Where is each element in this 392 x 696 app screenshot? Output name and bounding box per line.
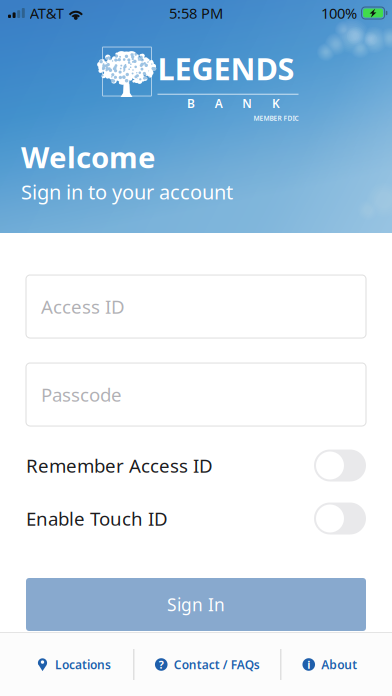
staticText: Access ID	[41, 294, 125, 319]
button[interactable]: Enable Touch ID	[26, 492, 366, 545]
staticText: 5:58 PM	[169, 3, 223, 23]
staticText: About	[321, 656, 357, 672]
staticText: Contact / FAQs	[174, 656, 260, 672]
staticText: Enable Touch ID	[26, 506, 168, 531]
staticText: Remember Access ID	[26, 453, 213, 478]
staticText: Locations	[55, 656, 111, 672]
staticText: A	[215, 95, 223, 111]
staticText: i	[307, 657, 310, 672]
staticText: MEMBER FDIC	[253, 114, 298, 123]
button[interactable]: i	[274, 640, 385, 688]
staticText: Sign in to your account	[21, 178, 233, 205]
staticText: Passcode	[41, 382, 122, 407]
button[interactable]: Locations	[7, 640, 140, 688]
staticText: B	[187, 95, 195, 111]
staticText: LEGENDS	[157, 48, 294, 89]
button[interactable]: ?	[134, 640, 280, 688]
staticText: 100%	[321, 3, 357, 23]
staticText: Welcome	[21, 137, 156, 176]
button[interactable]: Sign In	[26, 578, 366, 631]
staticText: N	[242, 95, 252, 111]
staticText: AT&T	[30, 3, 64, 23]
staticText: Sign In	[167, 593, 225, 616]
button[interactable]: Remember Access ID	[26, 439, 366, 492]
staticText: ?	[159, 657, 164, 672]
staticText: K	[272, 95, 280, 111]
